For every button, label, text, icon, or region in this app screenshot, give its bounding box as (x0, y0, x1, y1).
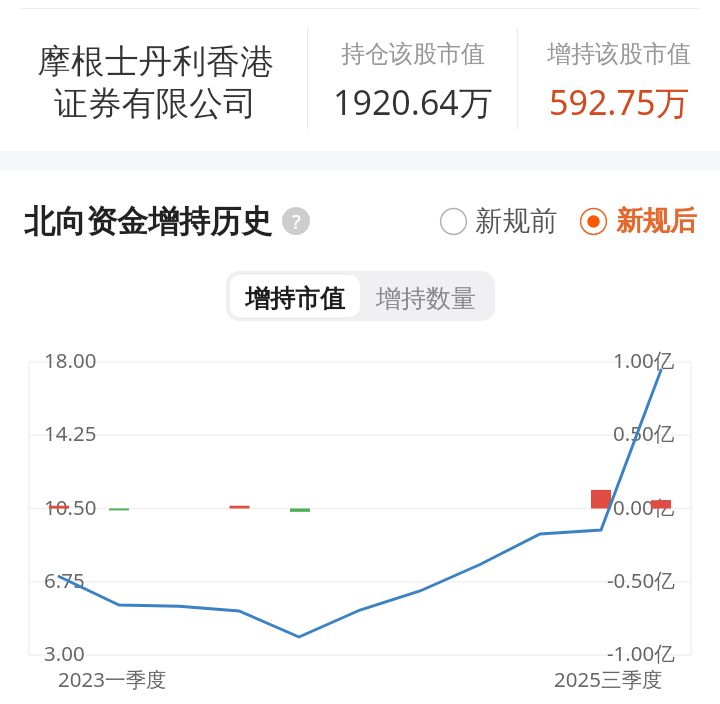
button[interactable]: 新规前 (439, 204, 558, 239)
staticText: 新规后 (616, 204, 697, 238)
button[interactable]: 增持数量 (360, 275, 491, 317)
staticText: 3.00 (44, 639, 85, 667)
staticText: 2025三季度 (554, 665, 663, 693)
staticText: 14.25 (44, 419, 97, 447)
staticText: 0.50亿 (613, 419, 675, 447)
staticText: 持仓该股市值 (341, 39, 485, 69)
staticText: 2023一季度 (58, 665, 167, 693)
staticText: -1.00亿 (607, 639, 675, 667)
staticText: 18.00 (44, 346, 97, 374)
staticText: 增持市值 (245, 283, 345, 314)
staticText: 1920.64万 (333, 79, 493, 119)
staticText: 10.50 (44, 493, 97, 521)
staticText: 增持该股市值 (547, 39, 691, 69)
staticText: 0.00亿 (613, 493, 675, 521)
staticText: 592.75万 (549, 79, 690, 119)
staticText: 增持数量 (376, 283, 476, 314)
button[interactable]: 新规后 (579, 204, 697, 238)
button[interactable]: Help (282, 207, 310, 235)
staticText: 6.75 (44, 566, 85, 594)
staticText: 1.00亿 (613, 346, 675, 374)
staticText: ? (292, 208, 301, 235)
staticText: 摩根士丹利香港 证券有限公司 (37, 40, 274, 122)
staticText: 新规前 (475, 204, 558, 239)
staticText: 北向资金增持历史 (24, 202, 272, 241)
button[interactable]: 增持市值 (230, 275, 360, 317)
staticText: -0.50亿 (607, 566, 675, 594)
